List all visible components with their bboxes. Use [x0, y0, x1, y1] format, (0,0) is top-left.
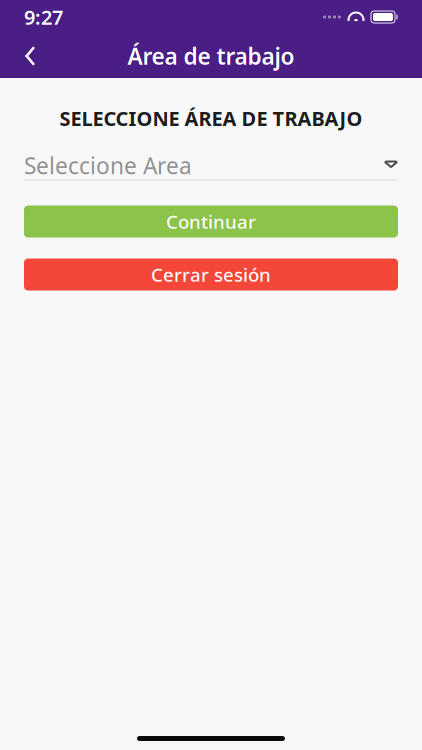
staticText: Continuar [166, 209, 256, 234]
button[interactable]: Back [8, 34, 52, 78]
button[interactable]: Continuar [24, 206, 398, 238]
button[interactable]: Cerrar sesión [24, 259, 398, 291]
staticText: Cerrar sesión [151, 262, 271, 287]
staticText: Seleccione Area [24, 150, 192, 181]
staticText: 9:27 [24, 4, 63, 30]
button[interactable]: Seleccione Area [0, 152, 422, 181]
staticText: SELECCIONE ÁREA DE TRABAJO [59, 105, 362, 132]
staticText: Área de trabajo [127, 41, 294, 71]
